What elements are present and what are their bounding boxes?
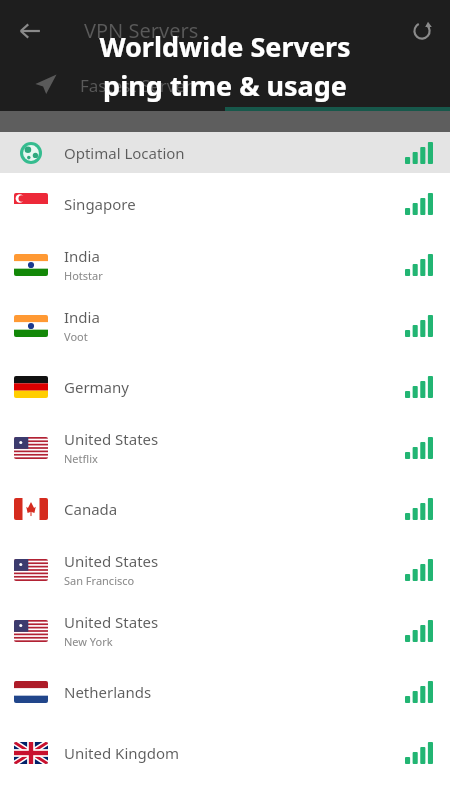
staticText: Worldwide Servers <box>99 28 351 65</box>
staticText: Canada <box>64 499 118 519</box>
button[interactable]: United States <box>0 600 450 661</box>
button[interactable]: Back <box>10 11 50 51</box>
staticText: San Francisco <box>64 573 135 588</box>
button[interactable]: United States <box>0 417 450 478</box>
staticText: Germany <box>64 377 129 397</box>
button[interactable]: United States <box>0 539 450 600</box>
staticText: Optimal Location <box>64 143 185 163</box>
staticText: Netherlands <box>64 682 152 702</box>
button[interactable]: India <box>0 295 450 356</box>
button[interactable]: Germany <box>0 356 450 417</box>
button[interactable]: India <box>0 234 450 295</box>
staticText: United States <box>64 551 159 571</box>
staticText: ping time & usage <box>103 67 347 104</box>
button[interactable]: Canada <box>0 478 450 539</box>
button[interactable]: Netherlands <box>0 661 450 722</box>
staticText: Fastest Server <box>80 74 193 97</box>
button[interactable]: United Kingdom <box>0 722 450 783</box>
staticText: India <box>64 307 100 327</box>
button[interactable]: Singapore <box>0 173 450 234</box>
staticText: Hotstar <box>64 268 103 283</box>
staticText: United States <box>64 429 159 449</box>
staticText: Voot <box>64 329 88 344</box>
staticText: VPN Servers <box>84 17 199 44</box>
staticText: Netflix <box>64 451 98 466</box>
button[interactable]: Optimal Location <box>0 132 450 173</box>
staticText: Singapore <box>64 194 136 214</box>
staticText: New York <box>64 634 113 649</box>
staticText: United States <box>64 612 159 632</box>
staticText: United Kingdom <box>64 743 180 763</box>
button[interactable]: Refresh <box>402 11 442 51</box>
staticText: India <box>64 246 100 266</box>
